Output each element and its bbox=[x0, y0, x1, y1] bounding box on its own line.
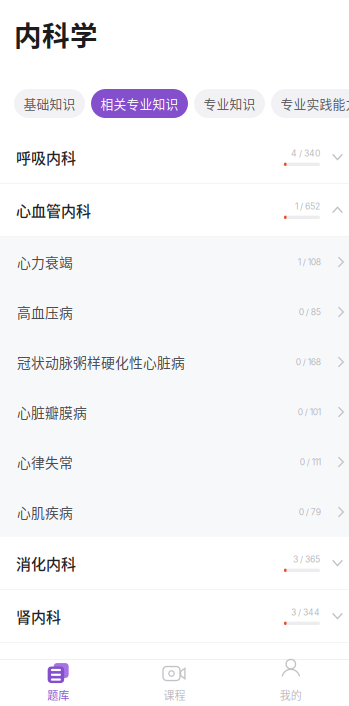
staticText: 我的 bbox=[280, 687, 302, 703]
staticText: 0 / 85 bbox=[299, 307, 321, 317]
staticText: 内分泌 bbox=[16, 658, 61, 680]
button[interactable]: 题库 bbox=[0, 660, 116, 706]
button[interactable]: 心力衰竭 bbox=[0, 237, 349, 287]
staticText: 肾内科 bbox=[16, 605, 61, 627]
staticText: 1 / 108 bbox=[298, 257, 321, 267]
staticText: 心力衰竭 bbox=[17, 252, 73, 272]
button[interactable]: 专业实践能力 bbox=[271, 89, 349, 118]
staticText: 0 / 252 bbox=[293, 660, 320, 671]
staticText: 高血压病 bbox=[17, 302, 73, 322]
staticText: 3 / 344 bbox=[291, 607, 320, 618]
staticText: 0 / 168 bbox=[296, 357, 321, 367]
button[interactable]: 相关专业知识 bbox=[91, 89, 188, 118]
button[interactable]: 呼吸内科 bbox=[0, 131, 349, 184]
staticText: 专业实践能力 bbox=[280, 94, 349, 113]
staticText: 0 / 111 bbox=[300, 457, 321, 467]
staticText: 0 / 101 bbox=[298, 407, 321, 417]
button[interactable]: 专业知识 bbox=[194, 89, 265, 118]
staticText: 0 / 79 bbox=[299, 507, 321, 517]
button[interactable]: 消化内科 bbox=[0, 537, 349, 590]
staticText: 心肌疾病 bbox=[17, 502, 73, 522]
staticText: 专业知识 bbox=[203, 94, 255, 113]
staticText: 3 / 365 bbox=[293, 554, 320, 565]
button[interactable]: 课程 bbox=[116, 660, 233, 706]
button[interactable]: 心律失常 bbox=[0, 437, 349, 487]
button[interactable]: 高血压病 bbox=[0, 287, 349, 337]
button[interactable]: 心脏瓣膜病 bbox=[0, 387, 349, 437]
staticText: 相关专业知识 bbox=[100, 94, 178, 113]
button[interactable]: 心血管内科 bbox=[0, 184, 349, 237]
staticText: 1 / 652 bbox=[295, 201, 320, 212]
staticText: 4 / 340 bbox=[291, 148, 320, 159]
button[interactable]: 我的 bbox=[233, 660, 349, 706]
button[interactable]: 肾内科 bbox=[0, 590, 349, 643]
button[interactable]: 心肌疾病 bbox=[0, 487, 349, 537]
staticText: 课程 bbox=[163, 687, 185, 703]
staticText: 消化内科 bbox=[16, 552, 76, 574]
staticText: 冠状动脉粥样硬化性心脏病 bbox=[17, 352, 185, 372]
button[interactable]: 内分泌 bbox=[0, 643, 349, 696]
staticText: 题库 bbox=[47, 687, 69, 703]
button[interactable]: 基础知识 bbox=[14, 89, 85, 118]
staticText: 心脏瓣膜病 bbox=[17, 402, 87, 422]
staticText: 心律失常 bbox=[17, 452, 73, 472]
staticText: 基础知识 bbox=[23, 94, 75, 113]
staticText: 心血管内科 bbox=[16, 199, 91, 221]
staticText: 呼吸内科 bbox=[16, 146, 76, 168]
staticText: 内科学 bbox=[14, 14, 98, 54]
button[interactable]: 冠状动脉粥样硬化性心脏病 bbox=[0, 337, 349, 387]
